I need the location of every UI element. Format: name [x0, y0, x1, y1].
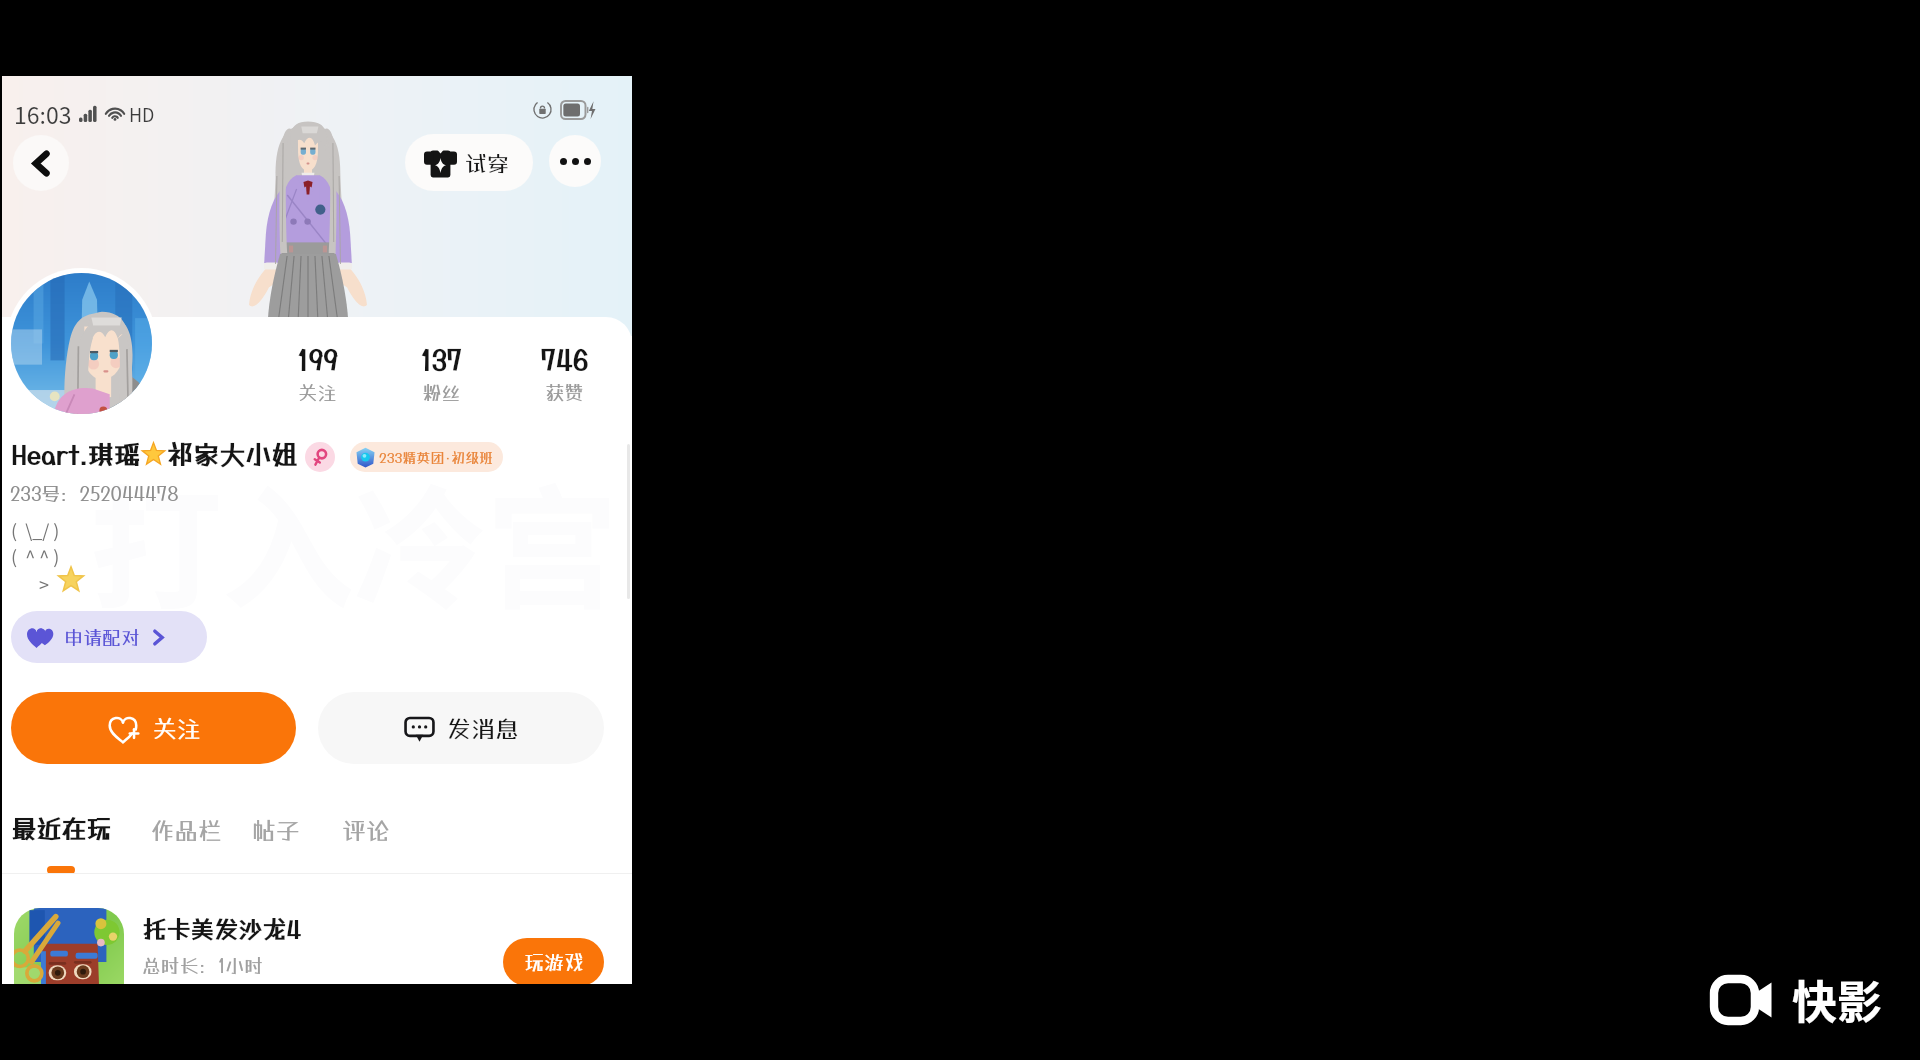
button[interactable]: Gender female [305, 442, 335, 472]
staticText: 作品栏 [150, 816, 222, 844]
button[interactable]: 关注 [11, 692, 296, 764]
button[interactable]: 746 [509, 344, 619, 403]
staticText: HD [129, 101, 155, 127]
button[interactable]: 玩游戏 [503, 938, 604, 984]
staticText: 关注 [153, 714, 201, 742]
button[interactable]: 233精英团·初级班 [350, 442, 503, 472]
staticText: 打入冷宫 [90, 444, 618, 635]
button[interactable]: 最近在玩 [11, 814, 112, 843]
staticText: 746 [540, 344, 588, 376]
staticText: 快影 [1792, 967, 1883, 1032]
button[interactable]: 评论 [342, 816, 390, 844]
staticText: 199 [297, 344, 338, 376]
button[interactable]: Back [13, 135, 69, 191]
staticText: 总时长：1小时 [142, 954, 264, 976]
staticText: 帖子 [252, 816, 300, 844]
button[interactable]: 帖子 [252, 816, 300, 844]
staticText: 233精英团·初级班 [379, 449, 494, 466]
staticText: 16:03 [14, 97, 72, 130]
staticText: ( ^ ^ ) [11, 543, 60, 569]
staticText: ( \_/ ) [11, 517, 60, 543]
button[interactable]: 137 [386, 344, 496, 403]
staticText: 获赞 [545, 381, 584, 403]
staticText: 试穿 [465, 150, 510, 176]
staticText: 申请配对 [64, 626, 141, 648]
staticText: 最近在玩 [11, 814, 112, 843]
staticText: 发消息 [447, 714, 519, 742]
button[interactable]: 申请配对 [11, 611, 207, 663]
button[interactable]: 199 [262, 344, 372, 403]
button[interactable]: Profile avatar [11, 273, 152, 414]
button[interactable]: 试穿 [405, 134, 533, 191]
staticText: 137 [420, 344, 462, 376]
staticText: 233号：252044478 [10, 482, 179, 504]
staticText: 祁家大小姐 [167, 439, 298, 470]
staticText: Heart.琪瑶 [11, 439, 140, 470]
staticText: 托卡美发沙龙4 [142, 915, 301, 943]
staticText: 粉丝 [422, 381, 461, 403]
staticText: 关注 [298, 381, 337, 403]
button[interactable]: 作品栏 [150, 816, 222, 844]
staticText: 玩游戏 [524, 950, 584, 974]
button[interactable]: More options [549, 135, 601, 187]
button[interactable]: 发消息 [318, 692, 604, 764]
staticText: 评论 [342, 816, 390, 844]
button[interactable]: 托卡美发沙龙4 [2, 876, 632, 984]
staticText: > [39, 571, 49, 597]
